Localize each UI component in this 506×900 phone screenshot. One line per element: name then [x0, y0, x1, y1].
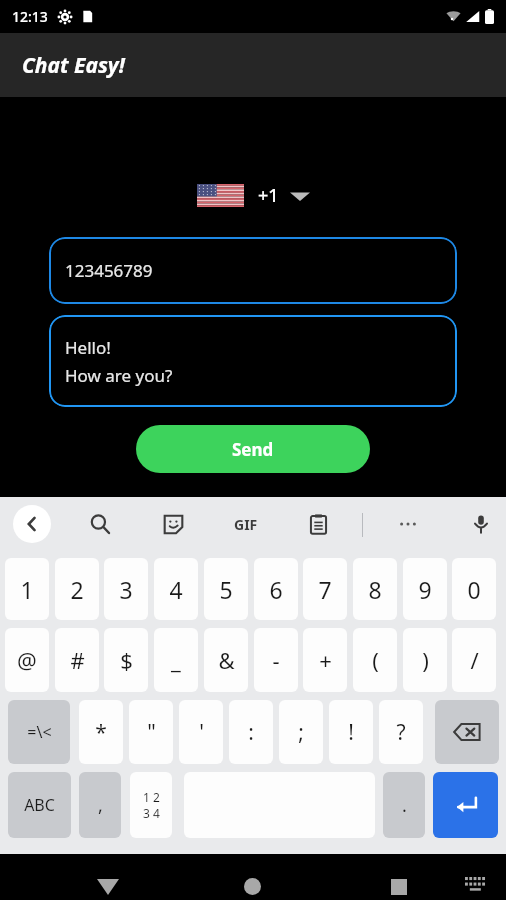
button[interactable] [433, 772, 498, 838]
button[interactable]: / [452, 628, 496, 692]
button[interactable]: @ [5, 628, 49, 692]
staticText: 9 [418, 574, 432, 605]
staticText: _ [171, 645, 181, 675]
button[interactable]: ; [279, 700, 323, 764]
staticText: 1 [20, 574, 34, 605]
button[interactable]: Send [136, 425, 370, 473]
button[interactable]: More options [390, 506, 426, 542]
button[interactable]: Switch keyboard [458, 866, 494, 900]
staticText: + [319, 645, 332, 675]
staticText: - [272, 645, 280, 675]
staticText: ' [199, 718, 204, 747]
staticText: =\< [27, 721, 52, 743]
staticText: " [147, 718, 156, 747]
button[interactable]: + [303, 628, 347, 692]
staticText: 123456789 [65, 259, 153, 282]
staticText: ABC [24, 794, 55, 816]
button[interactable] [435, 700, 499, 764]
button[interactable]: Search [82, 506, 118, 542]
button[interactable]: 0 [452, 558, 496, 620]
staticText: 0 [467, 574, 481, 605]
staticText: 5 [219, 574, 233, 605]
button[interactable]: . [383, 772, 425, 838]
button[interactable]: ? [379, 700, 423, 764]
button[interactable]: Recent apps [376, 864, 421, 900]
staticText: How are you? [65, 364, 173, 387]
button[interactable]: Stickers [155, 506, 191, 542]
button[interactable]: 7 [303, 558, 347, 620]
button[interactable]: Back [85, 864, 130, 900]
staticText: 7 [318, 574, 332, 605]
button[interactable]: ! [329, 700, 373, 764]
button[interactable]: 1 [5, 558, 49, 620]
button[interactable]: Home [230, 864, 275, 900]
button[interactable]: +1 [0, 183, 506, 208]
button[interactable]: ( [353, 628, 397, 692]
staticText: ( [372, 645, 379, 675]
button[interactable]: 6 [254, 558, 298, 620]
staticText: ) [422, 645, 429, 675]
button[interactable]: - [254, 628, 298, 692]
button[interactable]: 8 [353, 558, 397, 620]
button[interactable]: 9 [403, 558, 447, 620]
staticText: ! [348, 718, 354, 747]
staticText: 6 [269, 574, 283, 605]
staticText: / [470, 645, 479, 675]
staticText: 1 2 [143, 789, 160, 805]
staticText: Send [232, 438, 274, 461]
staticText: 4 [169, 574, 183, 605]
button[interactable]: ) [403, 628, 447, 692]
staticText: & [218, 645, 235, 675]
staticText: 2 [70, 574, 84, 605]
button[interactable]: , [79, 772, 121, 838]
button[interactable]: 5 [204, 558, 248, 620]
button[interactable]: 2 [55, 558, 99, 620]
button[interactable]: GIF [226, 506, 266, 542]
button[interactable]: * [79, 700, 123, 764]
button[interactable]: Hello! [49, 315, 457, 407]
staticText: , [98, 793, 103, 818]
staticText: ; [298, 718, 304, 747]
button[interactable]: Back [13, 505, 51, 543]
staticText: : [248, 718, 254, 747]
button[interactable]: =\< [8, 700, 70, 764]
staticText: 12:13 [12, 7, 48, 26]
staticText: 3 [119, 574, 133, 605]
button[interactable]: & [204, 628, 248, 692]
staticText: 3 4 [143, 805, 160, 821]
staticText: +1 [258, 183, 279, 208]
button[interactable]: Voice input [463, 506, 499, 542]
button[interactable]: ABC [8, 772, 71, 838]
button[interactable]: Clipboard [300, 506, 336, 542]
button[interactable]: $ [104, 628, 148, 692]
staticText: . [402, 793, 407, 818]
button[interactable]: 1 2 [130, 772, 172, 838]
button[interactable]: _ [154, 628, 198, 692]
button[interactable]: 3 [104, 558, 148, 620]
button[interactable]: : [229, 700, 273, 764]
button[interactable]: # [55, 628, 99, 692]
button[interactable]: 4 [154, 558, 198, 620]
button[interactable]: 123456789 [49, 237, 457, 304]
button[interactable]: ' [179, 700, 223, 764]
staticText: Chat Easy! [22, 51, 125, 80]
staticText: ? [396, 718, 406, 747]
staticText: @ [17, 645, 37, 675]
staticText: Hello! [65, 336, 111, 359]
staticText: * [95, 718, 107, 747]
staticText: # [70, 645, 85, 675]
staticText: $ [120, 645, 133, 675]
button[interactable]: " [129, 700, 173, 764]
staticText: GIF [234, 515, 258, 534]
staticText: 8 [368, 574, 382, 605]
